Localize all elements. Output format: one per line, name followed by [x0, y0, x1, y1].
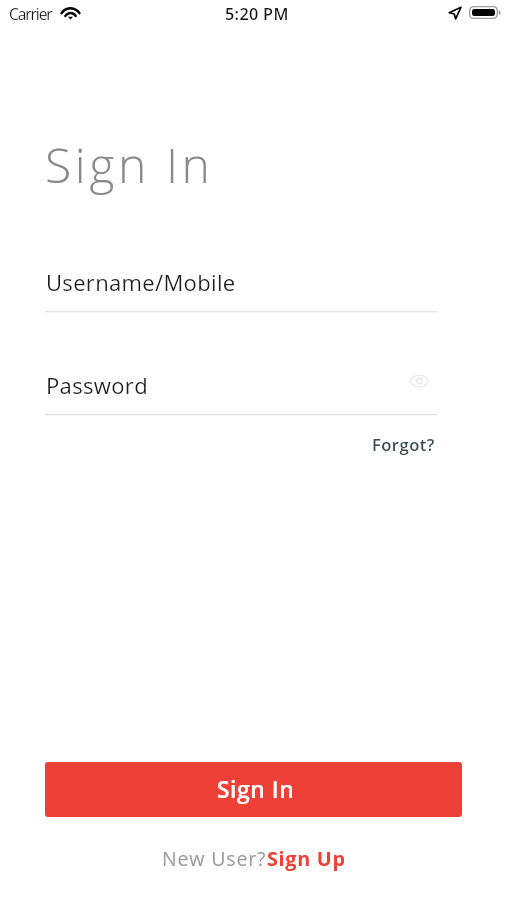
staticText: Sign Up — [267, 845, 346, 872]
button[interactable]: Username/Mobile — [45, 261, 437, 313]
button[interactable]: Sign Up — [267, 845, 346, 872]
button[interactable]: Show password — [405, 369, 433, 393]
staticText: Forgot? — [372, 433, 435, 456]
staticText: Password — [46, 370, 148, 400]
staticText: 5:20 PM — [225, 3, 289, 25]
button[interactable]: Forgot? — [358, 426, 436, 465]
button[interactable]: Sign In — [45, 762, 462, 817]
staticText: Sign In — [45, 132, 214, 197]
staticText: Carrier — [9, 3, 52, 24]
staticText: New User? — [162, 845, 267, 872]
staticText: Sign In — [217, 774, 295, 805]
button[interactable]: Password — [45, 364, 437, 416]
staticText: Username/Mobile — [46, 267, 236, 297]
